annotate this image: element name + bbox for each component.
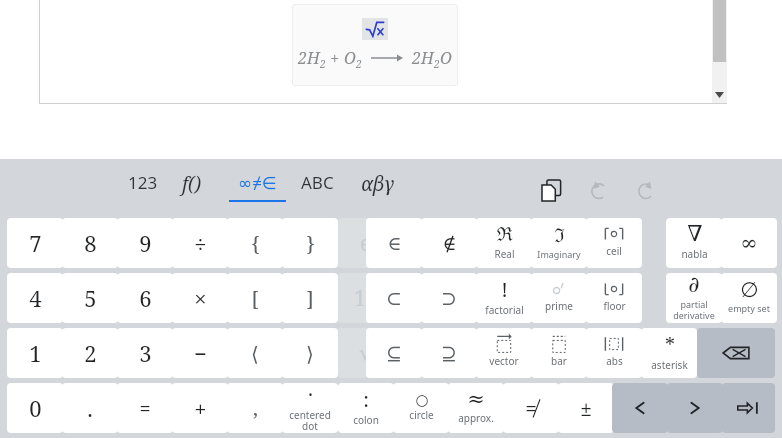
button[interactable]: ± — [558, 383, 614, 433]
staticText: ○ — [415, 391, 429, 408]
button[interactable]: . — [62, 383, 118, 433]
button[interactable]: = — [117, 383, 173, 433]
staticText: 2 — [320, 57, 326, 71]
staticText: ∇ — [687, 221, 703, 247]
button[interactable]: Move right — [667, 383, 723, 433]
staticText: ABC — [301, 171, 334, 194]
button[interactable]: ∞ — [721, 218, 777, 268]
button[interactable]: abs — [586, 328, 642, 378]
button[interactable]: × — [172, 273, 228, 323]
button[interactable]: { — [227, 218, 283, 268]
button[interactable]: αβγ — [361, 171, 395, 211]
button[interactable]: * — [641, 328, 697, 378]
button[interactable]: ABC — [301, 171, 334, 211]
button[interactable]: ≈ — [448, 383, 504, 433]
button[interactable]: ! — [476, 273, 532, 323]
staticText: ∈ — [387, 232, 402, 254]
button[interactable]: : — [338, 383, 394, 433]
button[interactable]: } — [282, 218, 338, 268]
button[interactable]: 0 — [7, 383, 63, 433]
button[interactable]: ∈ — [366, 218, 422, 268]
staticText: e — [360, 229, 372, 258]
button[interactable]: ⊆ — [366, 328, 422, 378]
button[interactable]: ÷ — [172, 218, 228, 268]
button[interactable]: floor — [586, 273, 642, 323]
staticText: f() — [182, 171, 202, 197]
button[interactable]: [ — [227, 273, 283, 323]
staticText: nabla — [681, 247, 708, 261]
button[interactable]: ⟨ — [227, 328, 283, 378]
button[interactable]: 3 — [117, 328, 173, 378]
button[interactable]: Backspace — [697, 328, 775, 378]
staticText: ⊇ — [441, 342, 457, 364]
button[interactable]: Scroll down — [712, 86, 727, 103]
staticText: ≈ — [467, 387, 485, 411]
staticText: 5 — [84, 283, 97, 313]
staticText: colon — [353, 413, 379, 427]
staticText: ∅ — [740, 278, 759, 302]
button[interactable]: − — [172, 328, 228, 378]
staticText: ceil — [606, 244, 622, 258]
button[interactable]: ∂ — [666, 273, 722, 323]
button[interactable]: Redo — [629, 173, 663, 207]
button[interactable]: 4 — [7, 273, 63, 323]
staticText: : — [363, 386, 369, 413]
button[interactable]: ∞≠∈ — [229, 171, 286, 211]
staticText: 9 — [139, 228, 152, 258]
button[interactable]: 5 — [62, 273, 118, 323]
button[interactable]: vector — [476, 328, 532, 378]
staticText: 2 — [434, 57, 440, 71]
button[interactable]: 123 — [128, 171, 158, 211]
button[interactable]: + — [172, 383, 228, 433]
button[interactable]: prime — [531, 273, 587, 323]
staticText: ÷ — [194, 228, 207, 258]
button[interactable]: ⊂ — [366, 273, 422, 323]
button[interactable]: 1 — [7, 328, 63, 378]
button[interactable]: 2 — [62, 328, 118, 378]
staticText: αβγ — [361, 171, 395, 197]
staticText: Imaginary — [537, 248, 581, 260]
button[interactable]: ⟩ — [282, 328, 338, 378]
button[interactable]: 6 — [117, 273, 173, 323]
staticText: 8 — [84, 228, 97, 258]
button[interactable]: ∇ — [666, 218, 722, 268]
staticText: Real — [494, 247, 515, 261]
staticText: floor — [603, 299, 626, 313]
button[interactable]: f() — [182, 171, 202, 211]
button[interactable]: 7 — [7, 218, 63, 268]
button[interactable]: ] — [282, 273, 338, 323]
button[interactable]: ≠ — [503, 383, 559, 433]
staticText: ⊂ — [386, 287, 402, 309]
staticText: circle — [409, 408, 434, 422]
button[interactable]: 8 — [62, 218, 118, 268]
button[interactable]: Enter — [722, 383, 775, 433]
button[interactable]: ℜ — [476, 218, 532, 268]
button[interactable]: ∅ — [721, 273, 777, 323]
staticText: 3 — [139, 338, 152, 368]
staticText: ⊃ — [441, 287, 457, 309]
button[interactable]: , — [227, 383, 283, 433]
button[interactable]: bar — [531, 328, 587, 378]
button[interactable]: Math formula — [292, 4, 458, 86]
staticText: 7 — [29, 228, 42, 258]
staticText: * — [665, 331, 675, 358]
button[interactable]: Undo — [582, 173, 616, 207]
staticText: 1 — [29, 338, 42, 368]
button[interactable]: Move left — [612, 383, 668, 433]
button[interactable]: Math formula — [362, 18, 388, 40]
button[interactable]: ⊃ — [421, 273, 477, 323]
button[interactable]: · — [282, 383, 338, 433]
button[interactable]: ⊇ — [421, 328, 477, 378]
button[interactable]: 9 — [117, 218, 173, 268]
staticText: 2H — [298, 47, 320, 69]
staticText: 6 — [139, 283, 152, 313]
button[interactable]: ℑ — [531, 218, 587, 268]
button[interactable]: ○ — [393, 383, 449, 433]
button[interactable]: ∉ — [421, 218, 477, 268]
button[interactable]: ceil — [586, 218, 642, 268]
staticText: − — [194, 338, 207, 368]
button[interactable]: Copy — [534, 173, 568, 207]
staticText: + — [194, 393, 207, 423]
staticText: ! — [501, 276, 508, 303]
